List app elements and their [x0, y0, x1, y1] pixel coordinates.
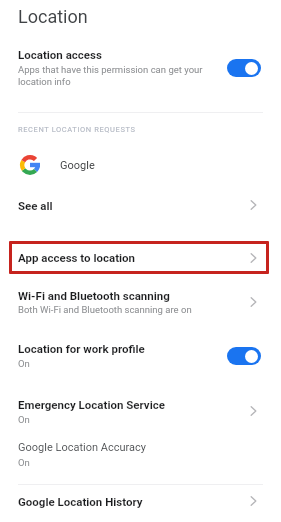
staticText: Emergency Location Service — [18, 398, 165, 411]
staticText: Location for work profile — [18, 342, 145, 355]
button[interactable]: Google Location History — [0, 485, 281, 517]
staticText: Google — [60, 159, 95, 172]
staticText: RECENT LOCATION REQUESTS — [18, 125, 136, 134]
button[interactable] — [227, 59, 261, 77]
button[interactable]: Emergency Location Service — [0, 389, 281, 433]
button[interactable]: App access to location — [9, 241, 269, 274]
button[interactable]: See all — [0, 185, 281, 225]
button[interactable]: Wi-Fi and Bluetooth scanning — [0, 282, 281, 322]
button[interactable]: Location access — [0, 29, 281, 113]
button[interactable] — [227, 347, 261, 365]
staticText: Wi-Fi and Bluetooth scanning — [18, 289, 170, 302]
staticText: Google Location History — [18, 495, 250, 508]
staticText: On — [18, 457, 30, 468]
button[interactable]: Google — [0, 145, 281, 185]
staticText: App access to location — [18, 251, 250, 264]
staticText: Google Location Accuracy — [18, 441, 146, 454]
staticText: Both Wi-Fi and Bluetooth scanning are on — [18, 304, 192, 315]
staticText: On — [18, 414, 30, 425]
staticText: See all — [18, 199, 250, 212]
button[interactable]: Google Location Accuracy — [0, 433, 281, 475]
staticText: On — [18, 358, 30, 369]
staticText: Apps that have this permission can get y… — [18, 64, 203, 87]
button[interactable]: Location for work profile — [0, 322, 281, 389]
staticText: Location access — [18, 48, 102, 61]
staticText: Location — [18, 6, 88, 27]
